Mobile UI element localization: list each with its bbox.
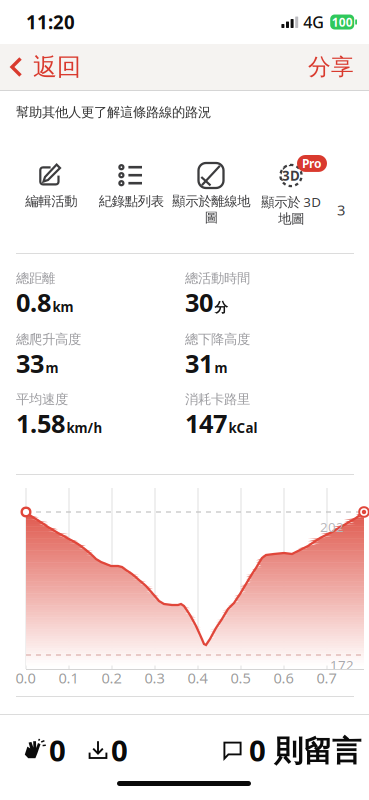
button[interactable]: 返回: [0, 44, 93, 90]
staticText: 總距離: [16, 270, 55, 286]
staticText: 0: [49, 730, 66, 769]
button[interactable]: 3D: [251, 160, 331, 238]
staticText: 消耗卡路里: [185, 391, 250, 407]
staticText: 0.5: [230, 668, 250, 687]
staticText: km: [52, 298, 73, 316]
staticText: 0.7: [316, 668, 336, 687]
staticText: 0.2: [101, 668, 121, 687]
button[interactable]: 分享: [291, 44, 369, 90]
staticText: m: [214, 359, 227, 377]
staticText: 100: [332, 14, 353, 30]
staticText: 顯示於 3D 地圖: [261, 193, 321, 227]
staticText: 0.6: [273, 668, 293, 687]
button[interactable]: 編輯活動: [11, 160, 91, 238]
staticText: 分: [214, 299, 227, 316]
staticText: 總活動時間: [185, 270, 250, 286]
staticText: 平均速度: [16, 391, 68, 407]
button[interactable]: 下載: [78, 724, 138, 776]
staticText: 幫助其他人更了解這條路線的路況: [16, 104, 211, 120]
staticText: 31: [185, 346, 213, 380]
staticText: 33: [16, 346, 44, 380]
staticText: 3D: [282, 167, 300, 184]
staticText: 0.8: [16, 285, 51, 319]
staticText: 147: [185, 406, 227, 440]
button[interactable]: 紀錄點列表: [91, 160, 171, 238]
button[interactable]: 3: [331, 160, 351, 278]
staticText: 3: [337, 200, 345, 219]
staticText: 總下降高度: [185, 331, 250, 347]
staticText: 0.1: [58, 668, 78, 687]
staticText: m: [45, 359, 58, 377]
staticText: 1.58: [16, 406, 65, 440]
staticText: 0.3: [144, 668, 164, 687]
staticText: 總爬升高度: [16, 331, 81, 347]
staticText: 返回: [33, 52, 81, 82]
staticText: 172: [330, 656, 354, 674]
button[interactable]: 0 則留言: [222, 724, 369, 776]
staticText: 0.0: [15, 668, 35, 687]
staticText: 紀錄點列表: [98, 193, 163, 209]
staticText: 0.4: [187, 668, 207, 687]
staticText: 202: [320, 518, 344, 536]
staticText: km/h: [66, 419, 102, 437]
button[interactable]: 拍手: [12, 724, 78, 776]
staticText: 分享: [308, 53, 354, 81]
staticText: 0: [111, 730, 128, 769]
staticText: 編輯活動: [25, 193, 77, 209]
staticText: kCal: [228, 419, 257, 437]
staticText: 0 則留言: [249, 730, 361, 769]
staticText: 30: [185, 285, 213, 319]
staticText: 顯示於離線地 圖: [172, 193, 250, 226]
staticText: 4G: [303, 11, 324, 33]
staticText: 11:20: [26, 10, 75, 34]
staticText: Pro: [302, 155, 322, 171]
button[interactable]: 顯示於離線地 圖: [171, 160, 251, 238]
